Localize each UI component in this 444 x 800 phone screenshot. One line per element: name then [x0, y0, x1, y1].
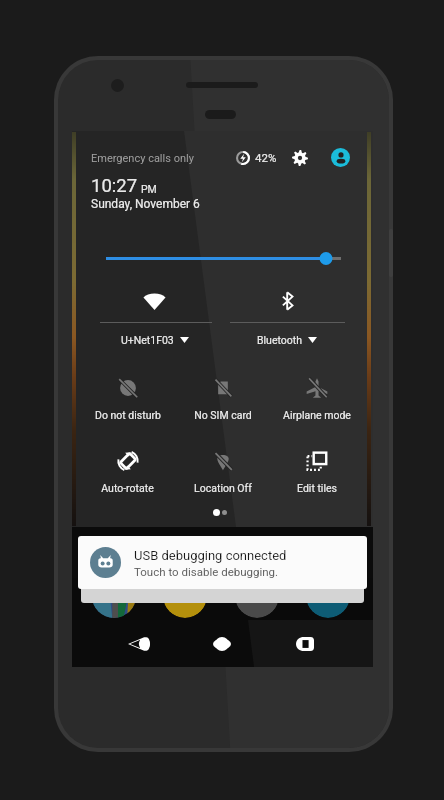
button[interactable]: Edit tiles	[269, 450, 364, 498]
staticText: U+Net1F03	[121, 334, 174, 346]
staticText: Auto-rotate	[101, 482, 154, 494]
button[interactable]: App shortcut	[163, 574, 207, 618]
button[interactable]: Airplane mode	[269, 377, 364, 425]
button[interactable]: Recent apps	[263, 620, 347, 667]
staticText: Location Off	[194, 482, 252, 494]
button[interactable]: Settings	[290, 148, 310, 168]
staticText: 10:27	[91, 175, 138, 197]
button[interactable]: App shortcut	[235, 574, 279, 618]
staticText: Edit tiles	[297, 482, 337, 494]
button[interactable]: Do not disturb	[80, 377, 175, 425]
button[interactable]: Home	[180, 620, 264, 667]
button[interactable]: App shortcut	[306, 574, 350, 618]
staticText: PM	[141, 183, 157, 195]
staticText: Sunday, November 6	[91, 197, 200, 211]
staticText: Airplane mode	[283, 409, 351, 421]
staticText: USB debugging connected	[134, 548, 287, 563]
button[interactable]: Location Off	[175, 450, 270, 498]
button[interactable]: Auto-rotate	[80, 450, 175, 498]
button[interactable]: USB debugging connected	[78, 536, 367, 589]
staticText: Do not disturb	[95, 409, 161, 421]
staticText: 42%	[255, 151, 277, 164]
staticText: No SIM card	[194, 409, 252, 421]
button[interactable]: Back	[97, 620, 181, 667]
button[interactable]: App shortcut	[92, 574, 136, 618]
button[interactable]: Brightness	[72, 249, 373, 269]
button[interactable]: Bluetooth	[223, 286, 351, 348]
staticText: Bluetooth	[257, 334, 302, 346]
staticText: Emergency calls only	[91, 152, 194, 165]
button[interactable]: No SIM card	[175, 377, 270, 425]
staticText: Touch to disable debugging.	[134, 565, 279, 578]
button[interactable]: U+Net1F03	[92, 286, 217, 348]
button[interactable]: User account	[331, 148, 350, 167]
